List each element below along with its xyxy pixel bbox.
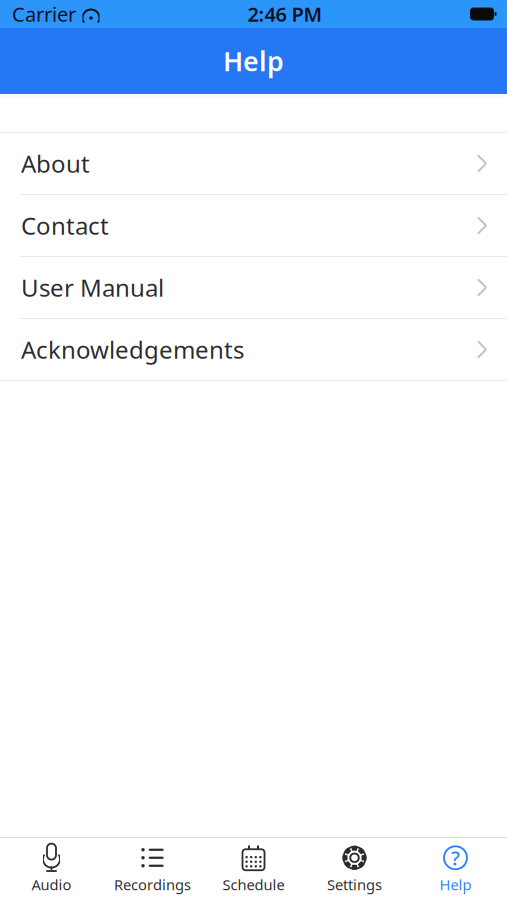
button[interactable]: ? [405, 841, 506, 897]
staticText: Contact [21, 210, 109, 241]
button[interactable]: About [0, 133, 507, 194]
staticText: Audio [31, 875, 71, 894]
staticText: Settings [327, 875, 382, 894]
button[interactable]: Settings [304, 841, 405, 897]
staticText: Acknowledgements [21, 334, 244, 365]
button[interactable]: Acknowledgements [0, 319, 507, 380]
staticText: Schedule [222, 875, 284, 894]
button[interactable]: Schedule [203, 841, 304, 897]
staticText: Help [223, 43, 284, 79]
button[interactable]: User Manual [0, 257, 507, 318]
staticText: About [21, 148, 90, 179]
staticText: ? [451, 844, 460, 871]
staticText: User Manual [21, 272, 164, 303]
staticText: Recordings [114, 875, 191, 894]
staticText: Help [439, 875, 471, 894]
button[interactable]: Recordings [102, 841, 203, 897]
staticText: Carrier [12, 1, 76, 27]
staticText: 2:46 PM [247, 1, 322, 27]
button[interactable]: Audio [1, 841, 102, 897]
button[interactable]: Contact [0, 195, 507, 256]
